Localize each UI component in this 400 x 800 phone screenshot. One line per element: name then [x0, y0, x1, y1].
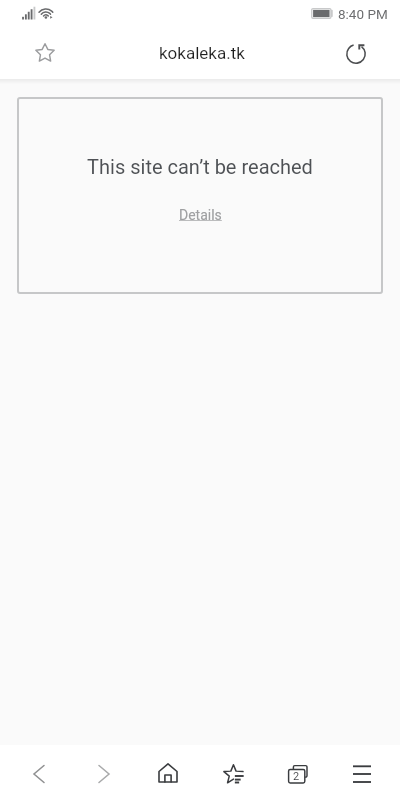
- staticText: Details: [179, 207, 222, 223]
- staticText: kokaleka.tk: [159, 43, 245, 63]
- button[interactable]: Bookmark this page: [25, 33, 65, 73]
- button[interactable]: Bookmarks: [199, 745, 264, 800]
- button[interactable]: Back: [6, 745, 70, 800]
- staticText: 8:40 PM: [338, 6, 388, 22]
- button[interactable]: Home: [134, 745, 199, 800]
- button[interactable]: Details: [179, 207, 222, 223]
- staticText: 2: [293, 770, 300, 783]
- button[interactable]: Menu: [329, 745, 394, 800]
- button[interactable]: Forward: [70, 745, 134, 800]
- button[interactable]: Reload page: [336, 34, 376, 74]
- button[interactable]: Tabs: [264, 745, 329, 800]
- staticText: This site can’t be reached: [87, 155, 313, 178]
